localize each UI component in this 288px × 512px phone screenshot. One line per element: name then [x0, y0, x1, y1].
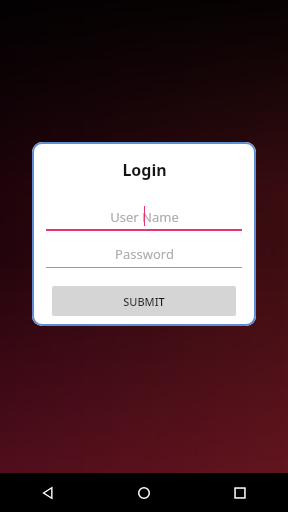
button[interactable]: User Name [46, 203, 242, 231]
button[interactable]: SUBMIT [52, 286, 236, 316]
staticText: User Name [110, 208, 179, 226]
button[interactable]: Recent apps [192, 473, 288, 512]
staticText: Password [115, 245, 174, 263]
button[interactable]: Home [96, 473, 192, 512]
button[interactable]: Back [0, 473, 96, 512]
button[interactable]: Password [46, 240, 242, 268]
staticText: SUBMIT [123, 294, 165, 309]
staticText: Login [122, 159, 167, 181]
